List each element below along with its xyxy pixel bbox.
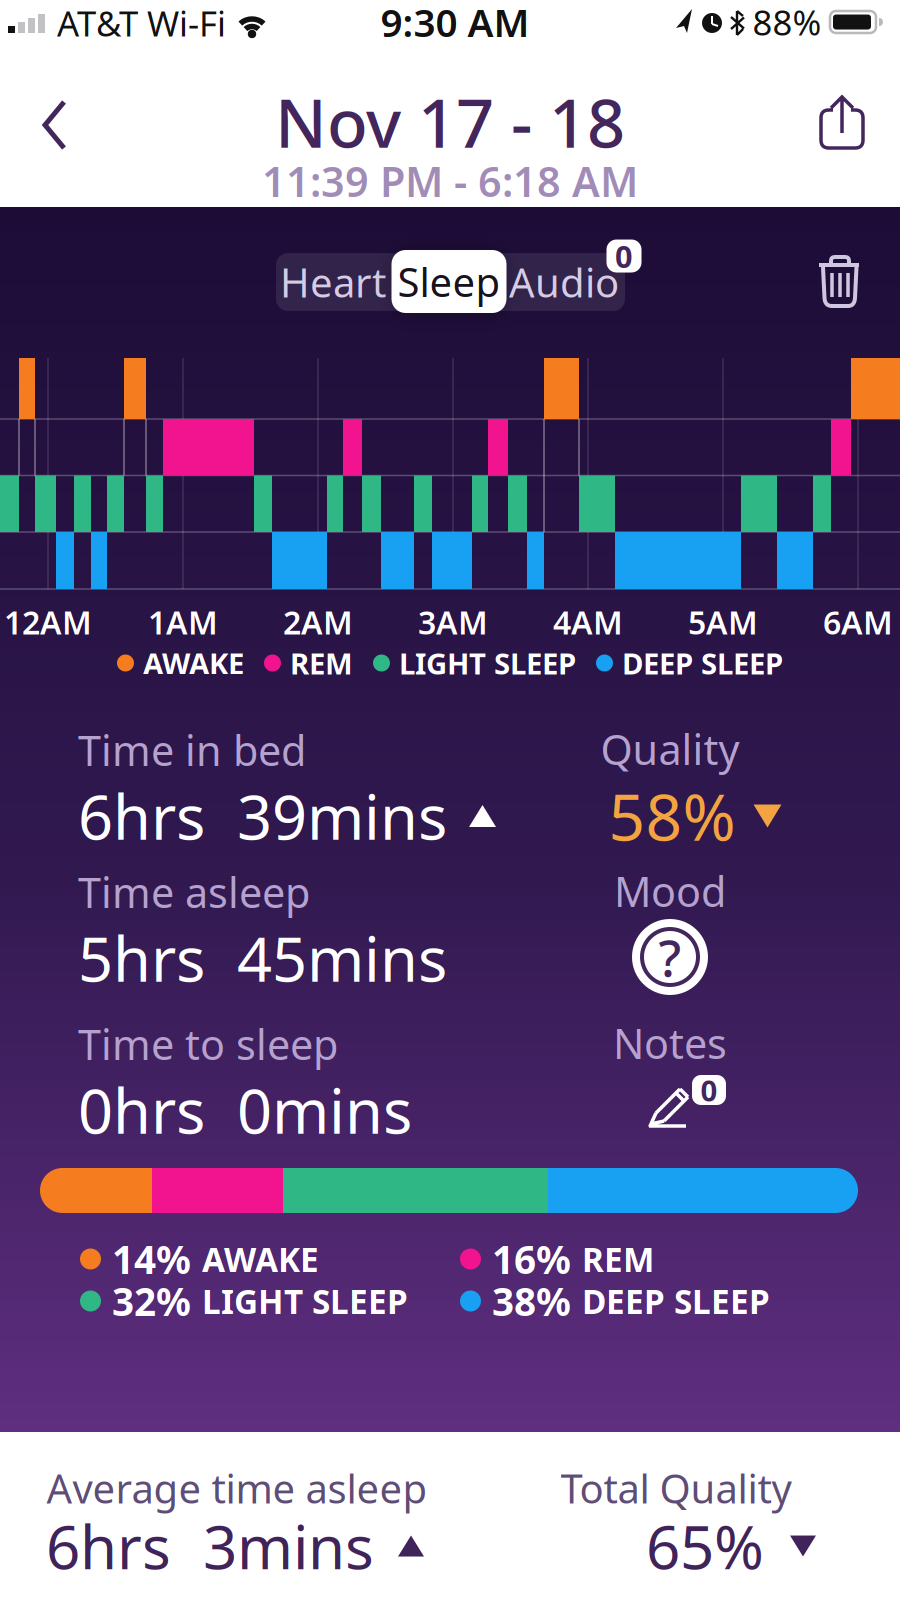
staticText: ? <box>658 923 681 991</box>
staticText: Time to sleep <box>78 1017 338 1071</box>
staticText: 6hrs 39mins <box>78 775 447 857</box>
staticText: 9:30 AM <box>380 0 529 48</box>
staticText: 0 <box>615 236 633 276</box>
staticText: Heart <box>280 255 386 308</box>
staticText: REM <box>582 1237 654 1281</box>
staticText: Mood <box>614 864 726 918</box>
staticText: 12AM <box>4 601 92 643</box>
staticText: 11:39 PM - 6:18 AM <box>262 154 638 208</box>
button[interactable]: ? <box>630 917 710 997</box>
staticText: 5AM <box>688 601 758 643</box>
staticText: 5hrs 45mins <box>78 917 447 999</box>
button[interactable] <box>27 95 87 155</box>
button[interactable] <box>810 93 874 157</box>
staticText: 0hrs 0mins <box>78 1069 412 1151</box>
staticText: 2AM <box>283 601 353 643</box>
staticText: Total Quality <box>560 1461 791 1514</box>
staticText: 14% <box>112 1233 191 1285</box>
button[interactable]: Heart <box>276 253 389 311</box>
staticText: Quality <box>600 722 739 776</box>
staticText: 6hrs 3mins <box>46 1506 374 1586</box>
staticText: REM <box>290 643 353 682</box>
staticText: AT&T Wi-Fi <box>57 0 226 46</box>
staticText: 1AM <box>148 601 218 643</box>
button[interactable]: Audio <box>507 253 620 311</box>
staticText: DEEP SLEEP <box>622 643 783 682</box>
staticText: Audio <box>509 255 619 308</box>
staticText: AWAKE <box>202 1237 319 1281</box>
staticText: 16% <box>492 1233 571 1285</box>
staticText: 58% <box>608 773 735 858</box>
staticText: Time in bed <box>78 723 306 777</box>
staticText: AWAKE <box>143 643 244 682</box>
staticText: Notes <box>613 1016 727 1070</box>
staticText: 88% <box>752 0 821 45</box>
button[interactable]: Sleep <box>391 250 506 313</box>
staticText: 0 <box>700 1070 717 1109</box>
staticText: Sleep <box>397 255 500 308</box>
staticText: 3AM <box>418 601 488 643</box>
staticText: 32% <box>112 1275 191 1327</box>
staticText: Average time asleep <box>46 1461 427 1514</box>
staticText: Time asleep <box>78 865 310 919</box>
staticText: Nov 17 - 18 <box>275 78 625 166</box>
staticText: 6AM <box>823 601 893 643</box>
staticText: 65% <box>646 1506 764 1586</box>
staticText: LIGHT SLEEP <box>399 643 576 682</box>
button[interactable] <box>806 250 870 314</box>
button[interactable]: 0 <box>630 1060 740 1140</box>
staticText: DEEP SLEEP <box>582 1279 770 1323</box>
staticText: LIGHT SLEEP <box>202 1279 408 1323</box>
staticText: 38% <box>492 1275 571 1327</box>
staticText: 4AM <box>553 601 623 643</box>
